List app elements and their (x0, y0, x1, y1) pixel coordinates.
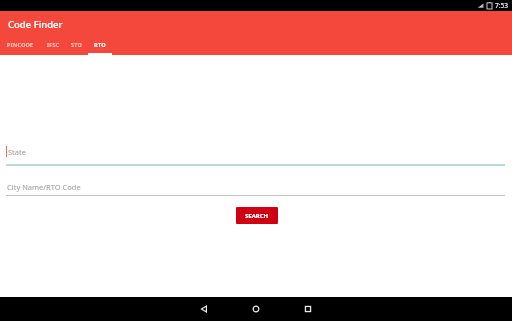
button[interactable]: State (0, 146, 512, 164)
button[interactable]: RTO (88, 35, 112, 55)
button[interactable]: City Name/RTO Code (0, 179, 512, 195)
staticText: 7:53 (495, 1, 508, 10)
staticText: SEARCH (245, 212, 269, 220)
staticText: STD (71, 41, 83, 48)
button[interactable]: STD (66, 35, 88, 55)
button[interactable]: IFSC (41, 35, 66, 55)
button[interactable]: Recent apps (282, 297, 334, 321)
staticText: PINCODE (7, 41, 34, 48)
staticText: RTO (94, 41, 106, 48)
button[interactable]: SEARCH (236, 207, 278, 224)
staticText: State (8, 147, 26, 157)
button[interactable]: Home (230, 297, 282, 321)
staticText: Code Finder (8, 18, 63, 31)
button[interactable]: Back (178, 297, 230, 321)
button[interactable]: PINCODE (0, 35, 41, 55)
staticText: City Name/RTO Code (7, 182, 81, 192)
staticText: IFSC (47, 41, 60, 48)
